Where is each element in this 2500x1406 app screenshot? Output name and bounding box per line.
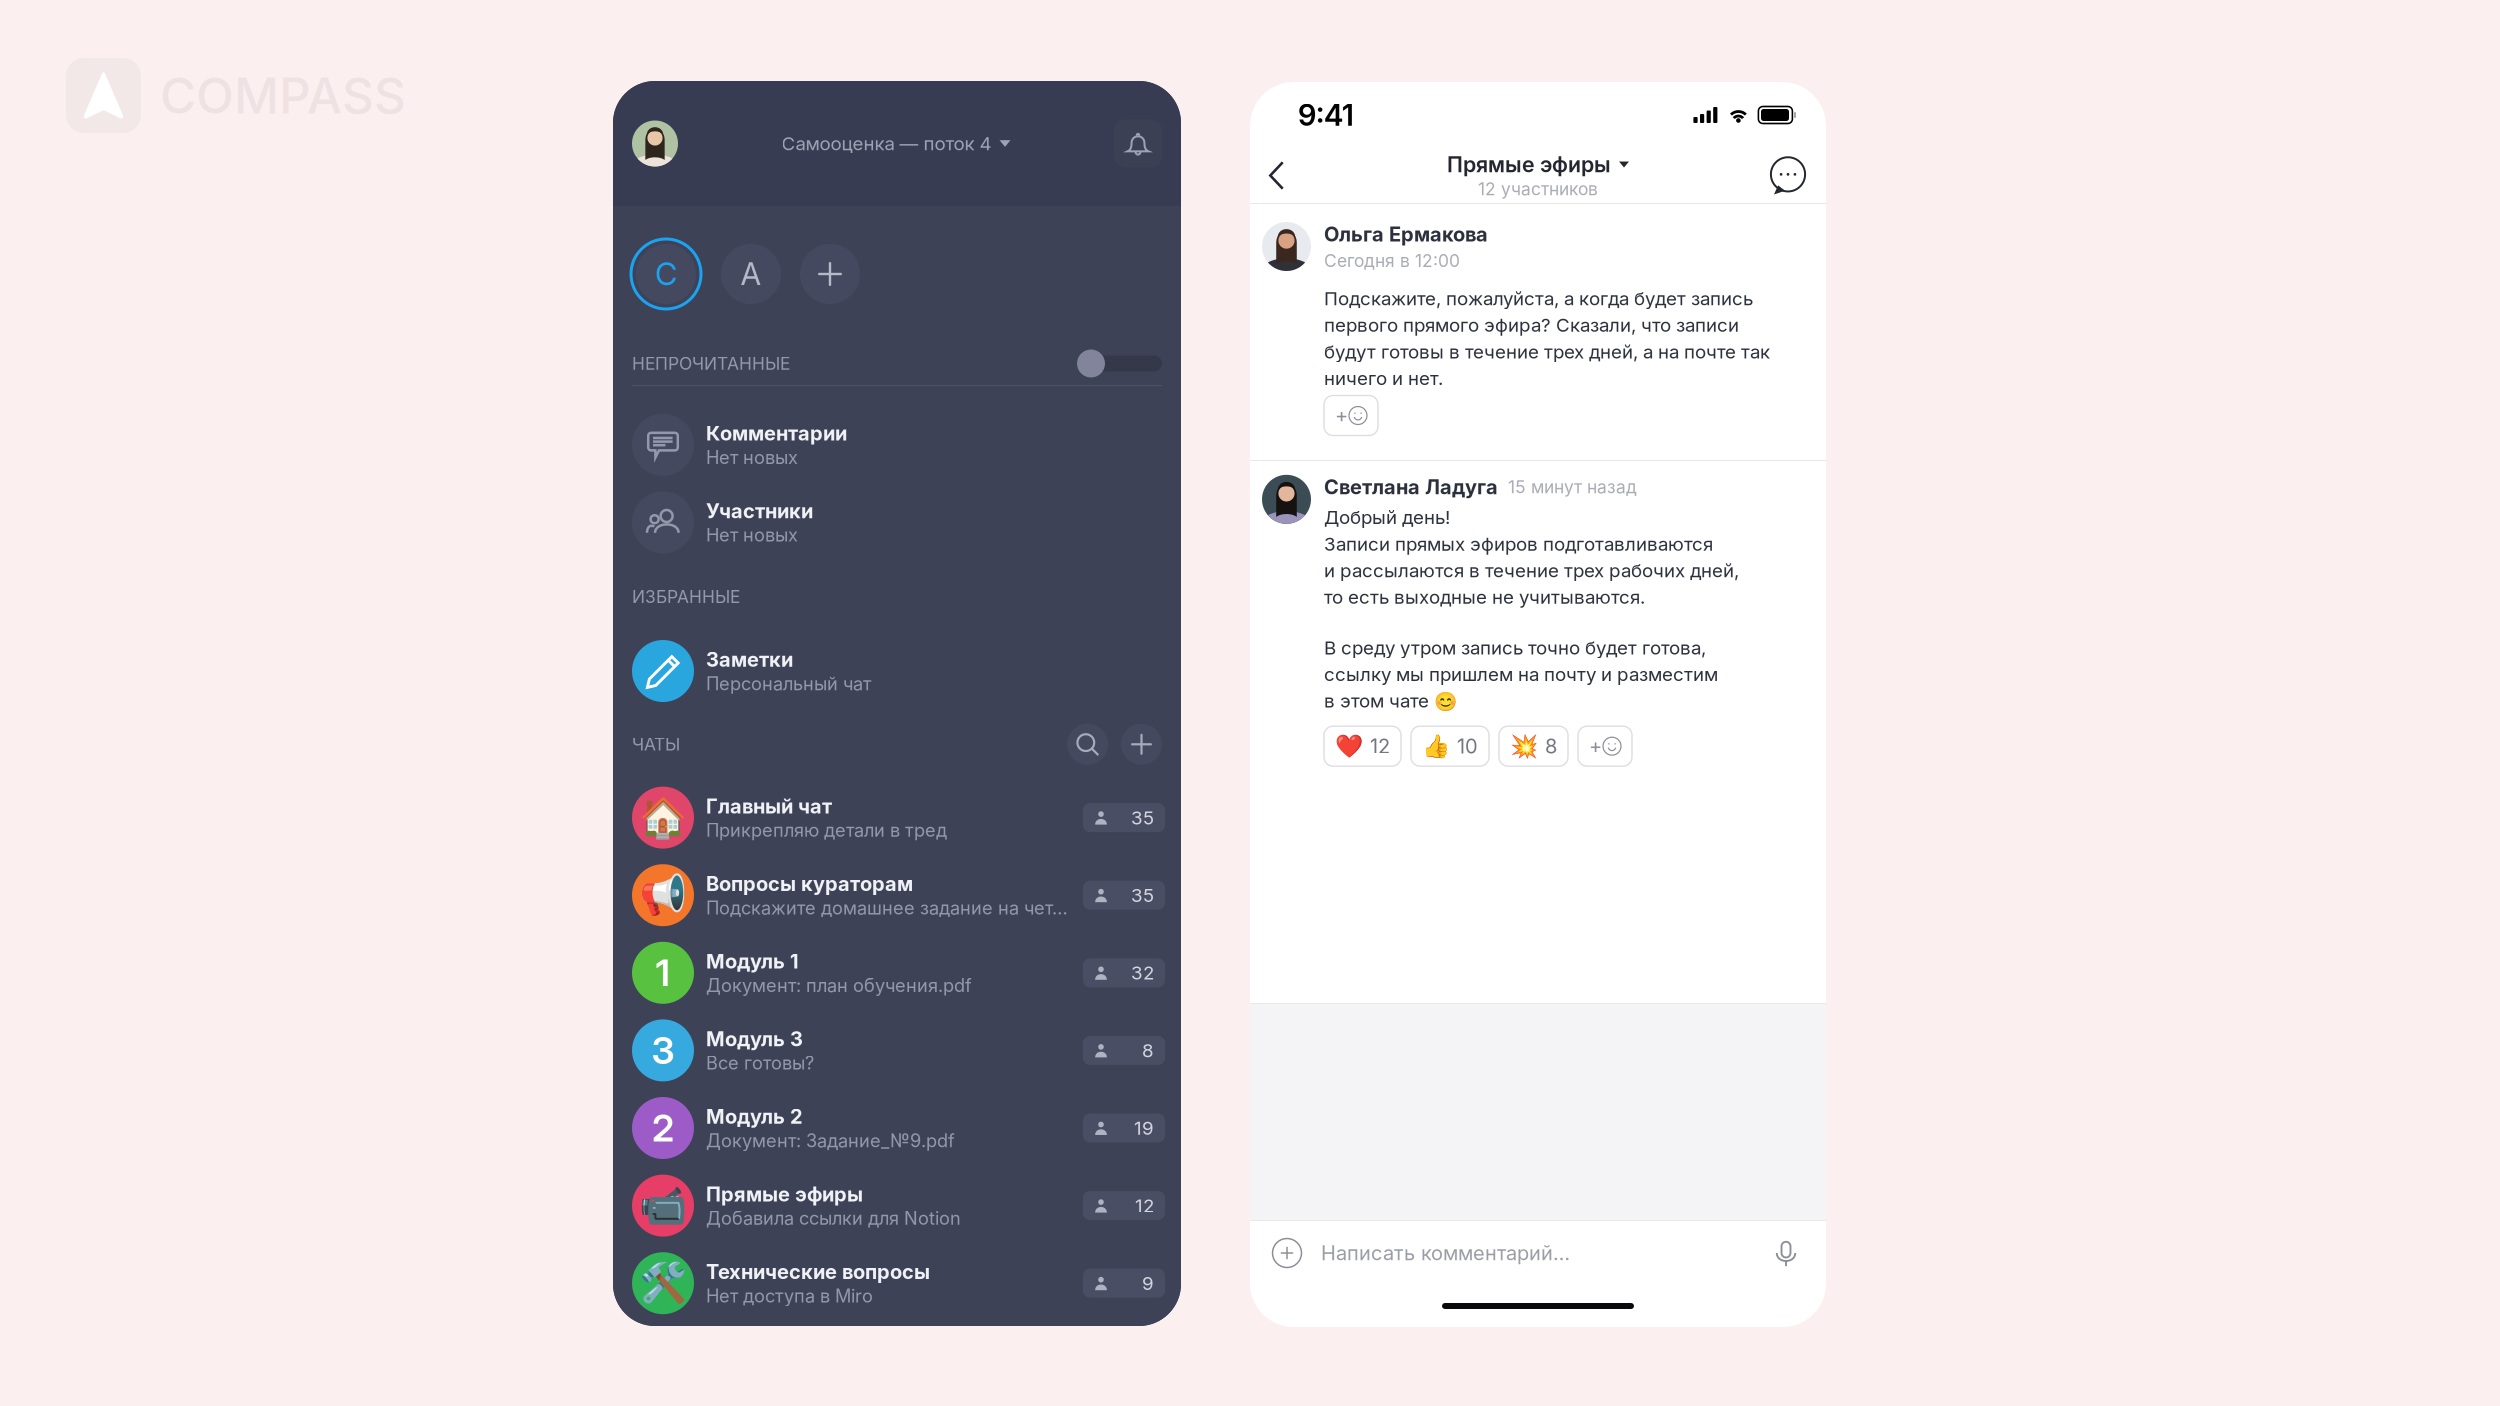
button[interactable]: 🏠	[613, 779, 1181, 856]
button[interactable]: Заметки	[613, 632, 1181, 710]
staticText: 35	[1131, 884, 1154, 906]
button[interactable]: 👍	[1411, 726, 1489, 766]
button[interactable]: 📢	[613, 856, 1181, 934]
staticText: 🏠	[639, 795, 687, 840]
button[interactable]: Прямые эфиры	[1447, 152, 1629, 199]
button[interactable]: Поиск	[1067, 724, 1108, 765]
staticText: 🛠	[639, 1260, 687, 1306]
staticText: Подскажите, пожалуйста, а когда будет за…	[1324, 287, 1770, 389]
button[interactable]: Назад	[1269, 149, 1317, 201]
staticText: 2	[652, 1105, 674, 1151]
staticText: Технические вопросы	[706, 1260, 930, 1284]
button[interactable]: 🛠	[613, 1244, 1181, 1322]
button[interactable]: 📹	[613, 1167, 1181, 1244]
staticText: Нет новых	[706, 446, 798, 468]
staticText: Светлана Ладуга	[1324, 475, 1498, 499]
button[interactable]: Уведомления	[1114, 119, 1162, 167]
button[interactable]: 3	[613, 1012, 1181, 1089]
staticText: ИЗБРАННЫЕ	[632, 586, 740, 607]
staticText: Заметки	[706, 647, 793, 672]
staticText: Прикрепляю детали в тред	[706, 819, 947, 841]
staticText: 15 минут назад	[1508, 476, 1637, 497]
staticText: Ольга Ермакова	[1324, 222, 1488, 246]
button[interactable]: Добавить реакцию	[1324, 395, 1378, 435]
staticText: 35	[1131, 806, 1154, 829]
staticText: 3	[651, 1028, 674, 1073]
staticText: 📢	[639, 872, 687, 918]
staticText: Персональный чат	[706, 673, 871, 694]
staticText: Модуль 3	[706, 1027, 803, 1051]
staticText: Документ: Задание_№9.pdf	[706, 1130, 955, 1151]
button[interactable]: Только непрочитанные	[1077, 348, 1162, 378]
staticText: Нет новых	[706, 524, 798, 546]
staticText: Прямые эфиры	[706, 1182, 863, 1206]
button[interactable]: 1	[613, 934, 1181, 1012]
staticText: 9:41	[1298, 97, 1354, 133]
button[interactable]: Чаты	[1759, 149, 1807, 201]
staticText: 8	[1545, 734, 1557, 758]
staticText: Участники	[706, 499, 813, 523]
staticText: 10	[1457, 734, 1478, 758]
staticText: 12	[1135, 1194, 1154, 1217]
staticText: Главный чат	[706, 794, 832, 818]
button[interactable]: Прикрепить	[1267, 1233, 1307, 1273]
staticText: Написать комментарий…	[1321, 1241, 1570, 1265]
staticText: 12 участников	[1478, 178, 1598, 199]
staticText: ЧАТЫ	[632, 734, 680, 755]
staticText: Модуль 2	[706, 1104, 803, 1129]
staticText: Вопросы кураторам	[706, 872, 913, 896]
staticText: 19	[1134, 1117, 1154, 1139]
staticText: Подскажите домашнее задание на чет…	[706, 897, 1068, 919]
staticText: +	[1589, 734, 1602, 758]
staticText: Сегодня в 12:00	[1324, 250, 1460, 271]
staticText: Все готовы?	[706, 1052, 814, 1074]
staticText: 8	[1142, 1039, 1154, 1062]
staticText: Модуль 1	[706, 949, 799, 973]
staticText: Добрый день! Записи прямых эфиров подгот…	[1324, 506, 1739, 608]
staticText: 9	[1142, 1272, 1154, 1294]
staticText: 32	[1131, 961, 1154, 984]
staticText: +	[1335, 403, 1348, 428]
staticText: COMPASS	[160, 66, 406, 125]
staticText: A	[740, 255, 761, 292]
button[interactable]: Добавить компанию	[800, 238, 860, 310]
staticText: Добавила ссылки для Notion	[706, 1207, 961, 1229]
button[interactable]: Самооценка — поток 4	[781, 132, 1010, 155]
button[interactable]: 2	[613, 1089, 1181, 1167]
staticText: C	[655, 255, 677, 292]
staticText: Документ: план обучения.pdf	[706, 974, 972, 996]
staticText: 12	[1370, 734, 1390, 758]
staticText: Прямые эфиры	[1447, 152, 1611, 177]
staticText: В среду утром запись точно будет готова,…	[1324, 636, 1718, 712]
button[interactable]: 💥	[1499, 726, 1568, 766]
staticText: 👍	[1422, 733, 1450, 759]
staticText: Самооценка — поток 4	[781, 132, 991, 155]
staticText: 💥	[1510, 733, 1538, 759]
button[interactable]: Участники	[613, 484, 1181, 561]
button[interactable]: A	[721, 238, 781, 310]
button[interactable]: Комментарии	[613, 406, 1181, 484]
staticText: Нет доступа в Miro	[706, 1285, 873, 1307]
button[interactable]: Добавить реакцию	[1578, 726, 1632, 766]
button[interactable]: Новый чат	[1121, 724, 1162, 765]
staticText: НЕПРОЧИТАННЫЕ	[632, 353, 790, 374]
staticText: 📹	[639, 1183, 687, 1228]
staticText: Комментарии	[706, 421, 847, 445]
button[interactable]: C	[630, 238, 702, 310]
staticText: ❤️	[1335, 733, 1363, 759]
button[interactable]: Профиль	[632, 120, 678, 166]
button[interactable]: ❤️	[1324, 726, 1401, 766]
button[interactable]: Голосовое сообщение	[1766, 1233, 1806, 1273]
staticText: 1	[655, 950, 670, 995]
